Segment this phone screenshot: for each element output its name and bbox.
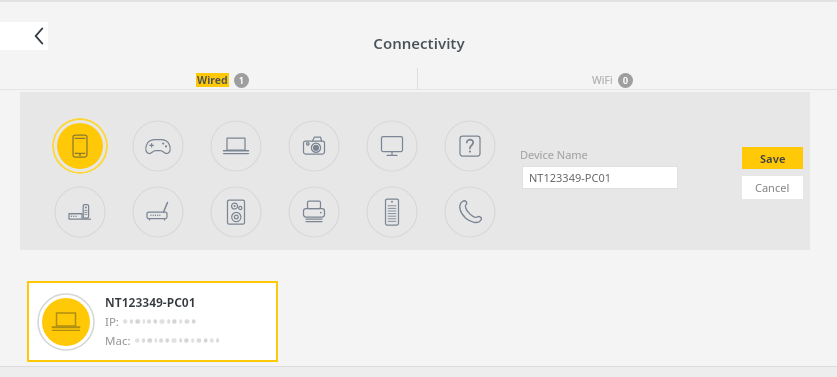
button[interactable]: Telephone (442, 184, 498, 240)
button[interactable]: NT123349-PC01 (27, 281, 278, 362)
staticText: 0 (623, 75, 628, 87)
button[interactable]: Speaker (208, 184, 264, 240)
staticText: Connectivity (373, 33, 465, 53)
staticText: Cancel (755, 180, 790, 195)
button[interactable]: Back (0, 22, 48, 50)
staticText: IP: (105, 314, 119, 330)
staticText: Save (760, 151, 786, 166)
button[interactable]: Phone (52, 118, 108, 174)
staticText: Mac: (105, 333, 131, 349)
button[interactable]: Router (130, 184, 186, 240)
button[interactable]: Unknown (442, 118, 498, 174)
staticText: NT123349-PC01 (529, 170, 611, 185)
staticText: NT123349-PC01 (105, 294, 196, 310)
button[interactable]: Wired (196, 70, 249, 90)
button[interactable]: Server (364, 184, 420, 240)
button[interactable]: Cancel (742, 176, 803, 199)
button[interactable]: Gamepad (130, 118, 186, 174)
staticText: Wired (197, 73, 228, 87)
button[interactable]: Camera (286, 118, 342, 174)
button[interactable]: NT123349-PC01 (522, 166, 678, 189)
staticText: Device Name (520, 147, 588, 162)
button[interactable]: Save (742, 147, 803, 169)
button[interactable]: WiFi (592, 70, 633, 90)
staticText: WiFi (592, 73, 613, 87)
button[interactable]: Printer (286, 184, 342, 240)
button[interactable]: Monitor (364, 118, 420, 174)
button[interactable]: Laptop (208, 118, 264, 174)
staticText: 1 (239, 75, 244, 87)
button[interactable]: Set top box (52, 184, 108, 240)
